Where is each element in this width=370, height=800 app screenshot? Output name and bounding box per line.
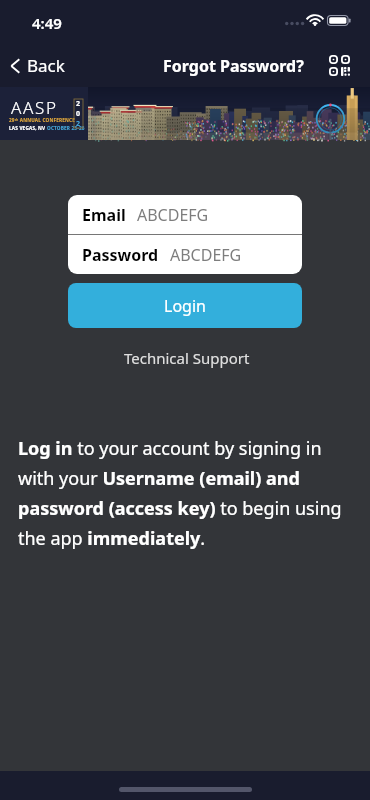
staticText: LAS VEGAS, NV [9, 125, 47, 131]
staticText: Password [82, 244, 159, 266]
staticText: Log in to your account by signing in wit… [18, 436, 350, 551]
staticText: Login [164, 295, 206, 317]
button[interactable]: Login [68, 283, 302, 328]
button[interactable]: Back [0, 48, 75, 83]
staticText: AASP [11, 96, 88, 119]
staticText: 2 [76, 119, 81, 128]
staticText: Technical Support [124, 348, 250, 368]
button[interactable]: Email [68, 195, 302, 234]
staticText: Forgot Password? [163, 55, 304, 77]
staticText: 0 [76, 109, 81, 119]
staticText: Email [82, 204, 126, 226]
staticText: Back [27, 54, 65, 77]
staticText: ABCDEFG [137, 204, 209, 226]
staticText: ABCDEFG [170, 244, 242, 266]
staticText: OCTOBER 23-26 [47, 125, 85, 131]
staticText: 29ᵗʰ ANNUAL CONFERENCE [9, 117, 88, 123]
button[interactable]: Scan QR code [329, 55, 350, 76]
button[interactable]: Technical Support [116, 344, 258, 372]
staticText: 4:49 [32, 13, 62, 33]
staticText: 2 [76, 99, 81, 109]
button[interactable]: Password [68, 235, 302, 274]
